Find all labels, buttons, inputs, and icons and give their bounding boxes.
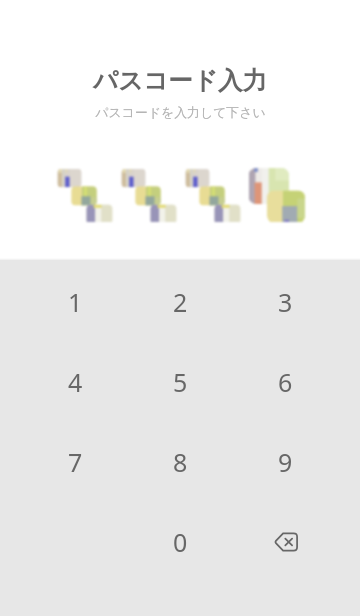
button[interactable]: 0 [128, 502, 233, 582]
staticText: 7 [68, 445, 83, 479]
button[interactable]: Delete [233, 502, 338, 582]
button[interactable]: 2 [128, 262, 233, 342]
other: Delete [274, 530, 298, 554]
staticText: 5 [173, 365, 188, 399]
button[interactable]: 4 [23, 342, 128, 422]
button[interactable]: 6 [233, 342, 338, 422]
staticText: 8 [173, 445, 188, 479]
button[interactable]: 8 [128, 422, 233, 502]
staticText: パスコード入力 [93, 65, 267, 96]
button[interactable]: 9 [233, 422, 338, 502]
button[interactable]: 1 [23, 262, 128, 342]
staticText: 1 [68, 285, 83, 319]
staticText: 6 [278, 365, 293, 399]
staticText: 9 [278, 445, 293, 479]
staticText: 2 [173, 285, 188, 319]
staticText: 4 [68, 365, 83, 399]
staticText: パスコードを入力して下さい [95, 105, 266, 121]
staticText: 0 [173, 525, 188, 559]
staticText: 3 [278, 285, 293, 319]
button[interactable]: 5 [128, 342, 233, 422]
button[interactable]: 3 [233, 262, 338, 342]
button[interactable]: 7 [23, 422, 128, 502]
